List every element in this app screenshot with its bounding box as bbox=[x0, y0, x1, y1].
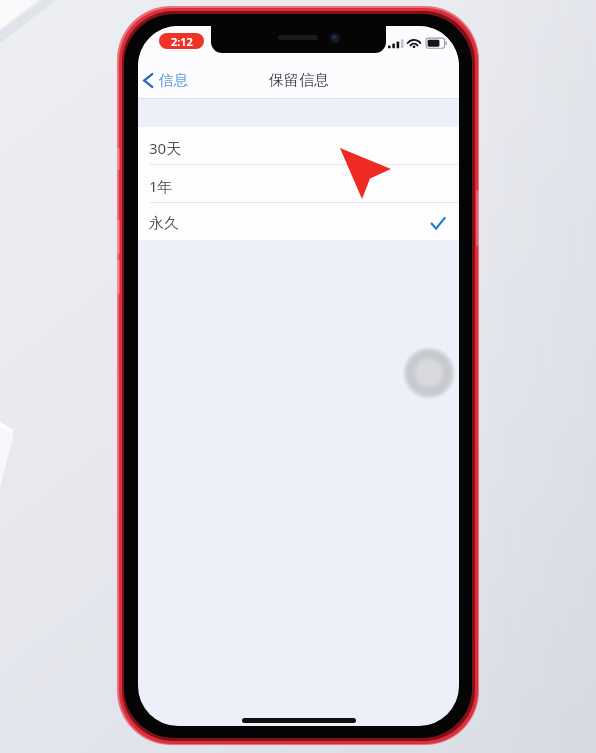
staticText: 保留信息 bbox=[269, 71, 329, 90]
button[interactable]: AssistiveTouch bbox=[402, 346, 456, 400]
button[interactable]: 永久 bbox=[138, 203, 459, 240]
button[interactable]: 信息 bbox=[139, 65, 192, 95]
staticText: 30天 bbox=[149, 138, 182, 158]
staticText: 永久 bbox=[149, 214, 179, 233]
staticText: 1年 bbox=[149, 176, 173, 196]
button[interactable]: 30天 bbox=[138, 127, 459, 164]
staticText: 2:12 bbox=[171, 34, 193, 49]
button[interactable]: 1年 bbox=[138, 165, 459, 202]
staticText: 信息 bbox=[159, 71, 188, 89]
